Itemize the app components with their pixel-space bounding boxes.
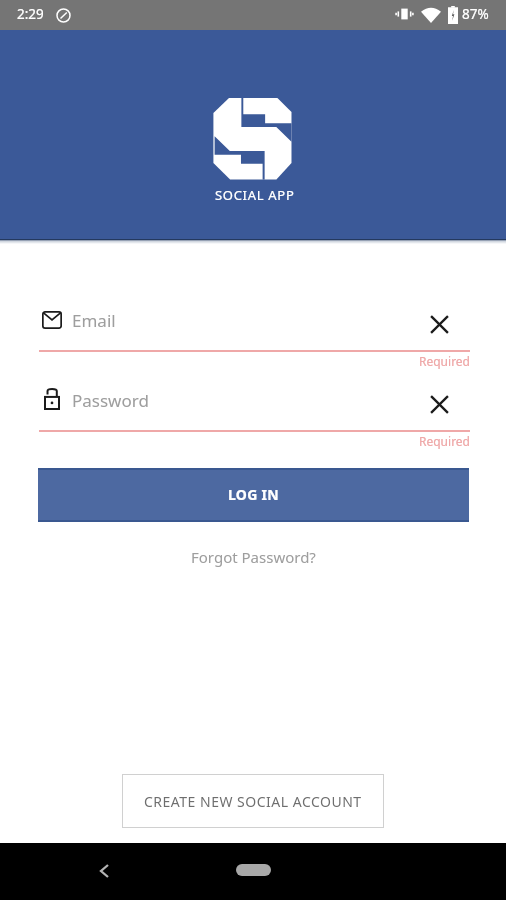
staticText: Password <box>72 389 149 412</box>
button[interactable]: Home <box>236 864 271 876</box>
button[interactable]: Forgot Password? <box>180 543 326 571</box>
button[interactable] <box>38 300 469 348</box>
button[interactable] <box>38 380 469 428</box>
staticText: Required <box>39 433 470 449</box>
staticText: LOG IN <box>228 485 280 504</box>
staticText: 87% <box>462 5 489 23</box>
staticText: Email <box>72 309 116 332</box>
staticText: SOCIAL APP <box>215 186 295 204</box>
button[interactable]: CREATE NEW SOCIAL ACCOUNT <box>122 774 384 828</box>
staticText: Required <box>39 353 470 369</box>
button[interactable]: Clear Password <box>419 384 459 424</box>
button[interactable]: LOG IN <box>38 468 469 522</box>
button[interactable]: Clear Email <box>419 304 459 344</box>
staticText: Forgot Password? <box>191 547 316 567</box>
staticText: CREATE NEW SOCIAL ACCOUNT <box>144 792 362 811</box>
staticText: 2:29 <box>17 5 44 23</box>
button[interactable]: Back <box>86 853 122 889</box>
